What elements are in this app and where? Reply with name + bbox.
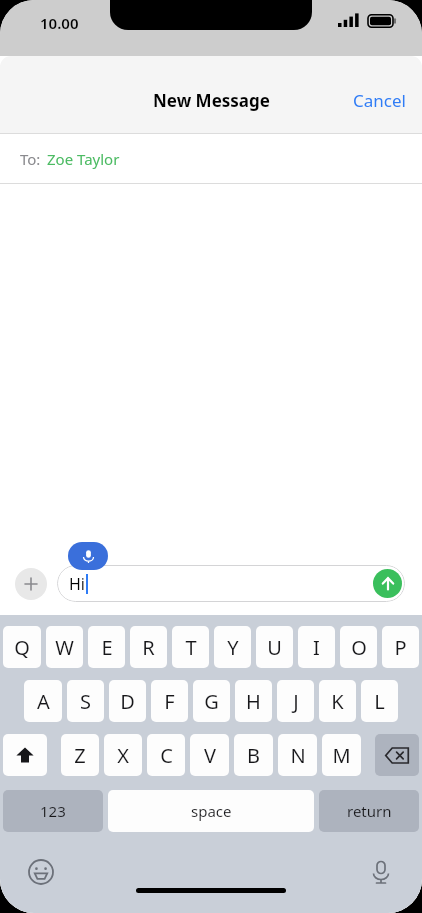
button[interactable]: E — [88, 626, 125, 668]
button[interactable]: C — [147, 734, 185, 776]
button[interactable]: Shift — [3, 734, 47, 776]
button[interactable]: N — [278, 734, 317, 776]
button[interactable]: J — [277, 680, 314, 722]
staticText: X — [117, 742, 129, 769]
button[interactable]: I — [298, 626, 335, 668]
staticText: U — [267, 634, 282, 661]
staticText: T — [185, 634, 197, 661]
staticText: E — [101, 634, 113, 661]
button[interactable]: H — [235, 680, 272, 722]
button[interactable]: Emoji — [26, 857, 56, 887]
button[interactable]: Backspace — [375, 734, 419, 776]
staticText: Z — [74, 742, 86, 769]
button[interactable]: Cancel — [337, 81, 422, 120]
staticText: P — [394, 634, 407, 661]
staticText: W — [55, 634, 74, 661]
button[interactable]: G — [193, 680, 230, 722]
staticText: G — [204, 688, 219, 715]
button[interactable]: U — [256, 626, 293, 668]
button[interactable]: 123 — [3, 790, 103, 832]
staticText: J — [293, 688, 299, 715]
button[interactable]: To: — [0, 134, 422, 183]
button[interactable]: R — [130, 626, 167, 668]
button[interactable]: L — [361, 680, 398, 722]
button[interactable]: Add attachment — [15, 568, 47, 600]
staticText: D — [120, 688, 135, 715]
staticText: V — [204, 742, 216, 769]
button[interactable]: D — [109, 680, 146, 722]
button[interactable]: Q — [3, 626, 41, 668]
staticText: To: — [20, 149, 41, 169]
staticText: Q — [14, 634, 30, 661]
staticText: K — [331, 688, 344, 715]
staticText: I — [313, 634, 320, 661]
staticText: New Message — [153, 89, 270, 112]
button[interactable]: A — [24, 680, 62, 722]
staticText: 123 — [40, 801, 66, 821]
staticText: Y — [227, 634, 239, 661]
staticText: B — [247, 742, 260, 769]
staticText: Hi — [69, 573, 85, 595]
staticText: N — [290, 742, 306, 769]
button[interactable]: space — [108, 790, 314, 832]
staticText: A — [37, 688, 50, 715]
staticText: L — [374, 688, 385, 715]
button[interactable]: F — [151, 680, 188, 722]
button[interactable]: P — [382, 626, 419, 668]
staticText: F — [164, 688, 175, 715]
staticText: Zoe Taylor — [47, 149, 120, 169]
button[interactable]: T — [172, 626, 209, 668]
button[interactable]: W — [46, 626, 83, 668]
button[interactable]: Send — [373, 569, 402, 598]
button[interactable]: M — [322, 734, 361, 776]
staticText: space — [191, 801, 232, 821]
button[interactable]: K — [319, 680, 356, 722]
button[interactable]: X — [104, 734, 142, 776]
button[interactable]: B — [234, 734, 273, 776]
button[interactable]: V — [190, 734, 229, 776]
button[interactable]: Hi — [57, 565, 405, 602]
button[interactable]: return — [319, 790, 419, 832]
staticText: R — [142, 634, 155, 661]
staticText: H — [246, 688, 261, 715]
staticText: S — [80, 688, 91, 715]
button[interactable]: S — [67, 680, 104, 722]
staticText: C — [160, 742, 173, 769]
staticText: return — [347, 801, 392, 821]
button[interactable]: O — [340, 626, 377, 668]
button[interactable]: Dictate — [68, 542, 108, 570]
staticText: Cancel — [353, 89, 406, 112]
button[interactable]: Y — [214, 626, 251, 668]
staticText: 10.00 — [40, 13, 79, 33]
staticText: O — [351, 634, 367, 661]
staticText: M — [332, 742, 351, 769]
button[interactable]: Z — [61, 734, 99, 776]
button[interactable]: Voice input — [366, 857, 396, 887]
